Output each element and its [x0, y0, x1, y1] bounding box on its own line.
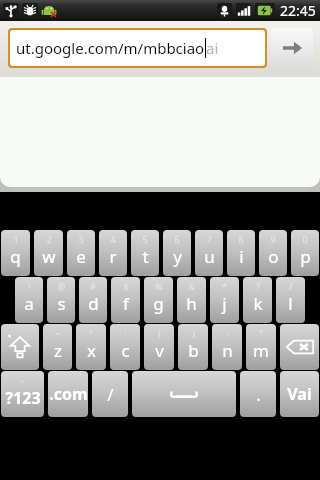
staticText: j — [222, 292, 227, 315]
button[interactable]: .com — [48, 371, 88, 417]
staticText: 5 — [142, 233, 148, 245]
staticText: a — [24, 292, 34, 315]
button[interactable]: 3 — [67, 230, 95, 276]
staticText: - — [226, 327, 229, 339]
staticText: - — [21, 374, 24, 386]
staticText: i — [239, 245, 244, 268]
staticText: h — [186, 292, 197, 315]
staticText: ) — [192, 327, 195, 339]
staticText: 9 — [270, 233, 276, 245]
staticText: z — [54, 339, 62, 362]
staticText: s — [57, 292, 66, 315]
button[interactable]: ° — [76, 324, 106, 370]
staticText: y — [173, 245, 182, 268]
staticText: * — [222, 280, 227, 292]
button[interactable]: 1 — [1, 230, 30, 276]
staticText: " — [259, 327, 263, 339]
staticText: d — [88, 292, 99, 315]
staticText: m — [253, 339, 269, 362]
staticText: x — [87, 339, 96, 362]
staticText: r — [109, 245, 117, 268]
staticText: % — [155, 280, 163, 292]
staticText: l — [288, 292, 293, 315]
button[interactable]: Delete — [280, 324, 319, 370]
button[interactable]: 7 — [195, 230, 223, 276]
staticText: ut.google.com/m/mbbciao — [16, 38, 205, 58]
button[interactable]: 5 — [131, 230, 159, 276]
staticText: v — [155, 339, 164, 362]
staticText: 0 — [302, 233, 308, 245]
button[interactable]: ' — [110, 324, 140, 370]
staticText: 2 — [46, 233, 52, 245]
staticText: 4 — [110, 233, 116, 245]
button[interactable]: ~ — [43, 324, 72, 370]
staticText: ~ — [55, 327, 61, 339]
staticText: . — [256, 383, 261, 406]
staticText: 8 — [238, 233, 244, 245]
button[interactable]: % — [144, 277, 173, 323]
staticText: ! — [28, 280, 31, 292]
staticText: ai — [206, 38, 219, 58]
staticText: k — [253, 292, 263, 315]
button[interactable]: Vai — [280, 371, 319, 417]
staticText: f — [123, 292, 129, 315]
button[interactable]: & — [177, 277, 206, 323]
staticText: Vai — [287, 383, 312, 405]
staticText: 22:45 — [280, 1, 316, 20]
button[interactable]: - — [212, 324, 242, 370]
button[interactable]: 9 — [259, 230, 287, 276]
staticText: / — [289, 280, 293, 292]
button[interactable]: ) — [178, 324, 208, 370]
staticText: $ — [123, 280, 129, 292]
button[interactable]: * — [210, 277, 239, 323]
staticText: 7 — [206, 233, 212, 245]
staticText: u — [204, 245, 215, 268]
staticText: 6 — [174, 233, 180, 245]
button[interactable]: " — [246, 324, 276, 370]
staticText: n — [222, 339, 233, 362]
staticText: ' — [124, 327, 127, 339]
button[interactable]: Go — [271, 28, 313, 68]
staticText: 3 — [78, 233, 84, 245]
button[interactable]: $ — [111, 277, 140, 323]
staticText: o — [268, 245, 279, 268]
staticText: .com — [49, 383, 88, 405]
button[interactable]: 4 — [99, 230, 127, 276]
button[interactable]: ut.google.com/m/mbbciao — [10, 30, 265, 66]
staticText: t — [142, 245, 149, 268]
button[interactable]: ? — [243, 277, 272, 323]
button[interactable]: / — [276, 277, 305, 323]
staticText: # — [90, 280, 96, 292]
button[interactable]: . — [240, 371, 276, 417]
button[interactable]: # — [79, 277, 107, 323]
staticText: ° — [89, 327, 93, 339]
staticText: 1 — [13, 233, 19, 245]
staticText: ( — [158, 327, 161, 339]
button[interactable]: 8 — [227, 230, 255, 276]
button[interactable]: Space — [132, 371, 236, 417]
staticText: q — [10, 245, 21, 268]
staticText: @ — [57, 280, 66, 292]
staticText: c — [121, 339, 130, 362]
staticText: / — [107, 383, 114, 406]
button[interactable]: Shift — [1, 324, 39, 370]
staticText: ?123 — [5, 387, 41, 409]
staticText: ? — [256, 280, 260, 292]
button[interactable]: 6 — [163, 230, 191, 276]
staticText: e — [76, 245, 86, 268]
button[interactable]: @ — [47, 277, 75, 323]
staticText: w — [42, 245, 56, 268]
button[interactable]: 2 — [34, 230, 63, 276]
button[interactable]: / — [92, 371, 128, 417]
button[interactable]: ( — [144, 324, 174, 370]
staticText: g — [153, 292, 164, 315]
staticText: & — [188, 280, 195, 292]
button[interactable]: 0 — [291, 230, 319, 276]
button[interactable]: ! — [15, 277, 43, 323]
staticText: b — [188, 339, 199, 362]
staticText: p — [300, 245, 311, 268]
button[interactable]: - — [1, 371, 44, 417]
